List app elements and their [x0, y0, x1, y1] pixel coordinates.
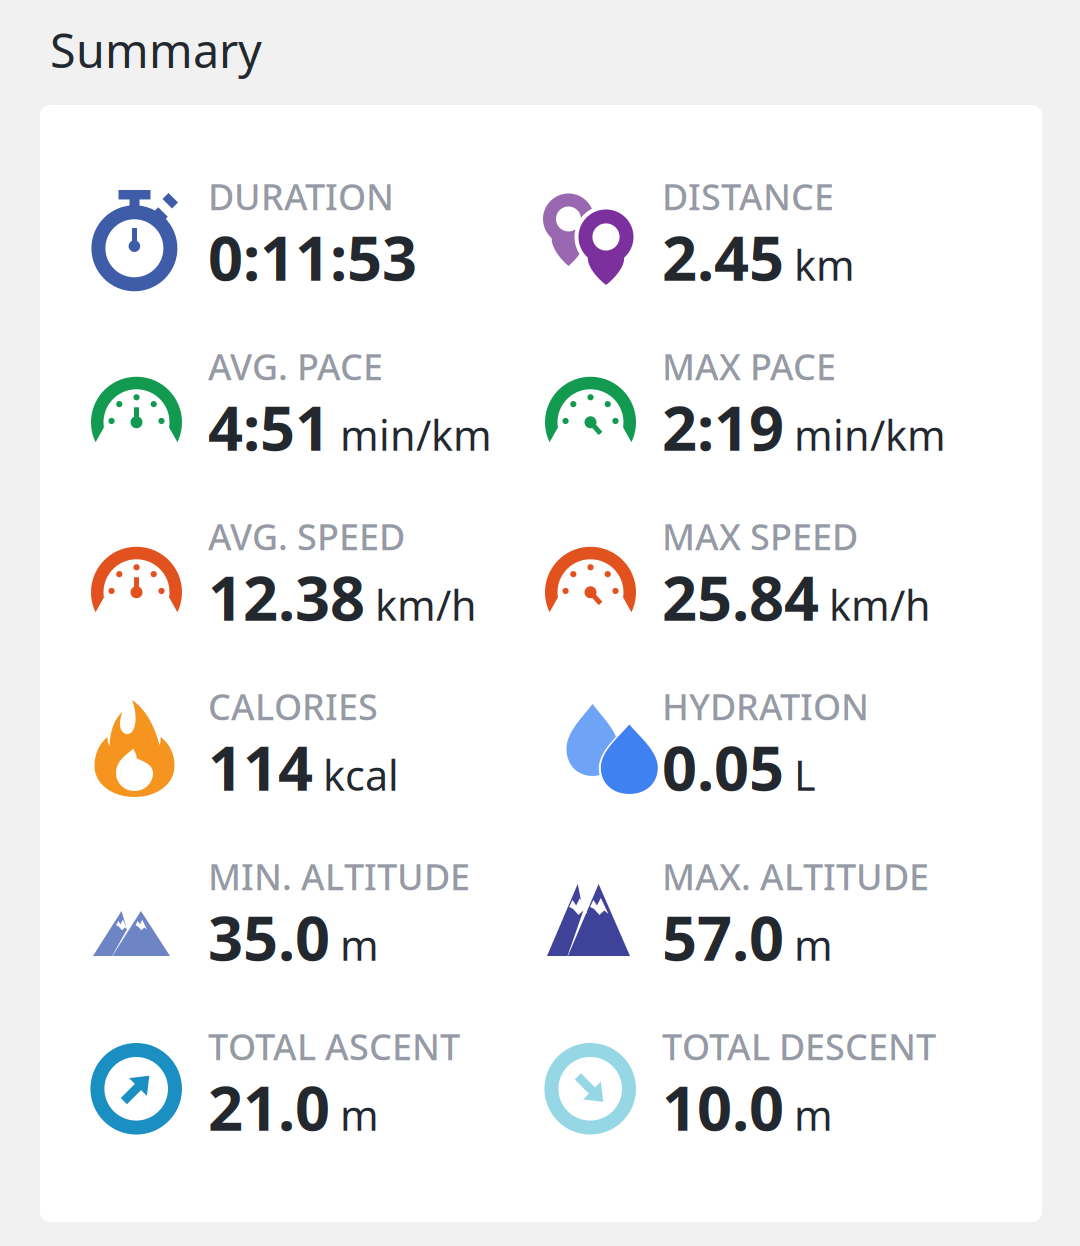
button[interactable]: MAX SPEED — [545, 490, 999, 660]
button[interactable]: CALORIES — [91, 660, 545, 830]
staticText: kcal — [323, 747, 399, 802]
button[interactable]: TOTAL DESCENT — [545, 1000, 999, 1170]
staticText: 21.0 — [208, 1066, 330, 1148]
staticText: TOTAL DESCENT — [662, 1022, 936, 1070]
staticText: MAX SPEED — [662, 512, 858, 560]
button[interactable]: MAX. ALTITUDE — [545, 830, 999, 1000]
staticText: Summary — [50, 19, 262, 81]
staticText: 57.0 — [662, 896, 784, 978]
staticText: 4:51 — [208, 386, 330, 468]
button[interactable]: MAX PACE — [545, 320, 999, 490]
button[interactable]: DISTANCE — [545, 150, 999, 320]
button[interactable]: DURATION — [91, 150, 545, 320]
staticText: 2.45 — [662, 216, 784, 298]
staticText: AVG. SPEED — [208, 512, 405, 560]
staticText: 0.05 — [662, 726, 784, 808]
staticText: km — [794, 237, 855, 292]
staticText: DISTANCE — [662, 172, 834, 220]
staticText: 35.0 — [208, 896, 330, 978]
staticText: km/h — [375, 577, 477, 632]
staticText: 10.0 — [662, 1066, 784, 1148]
staticText: m — [340, 917, 379, 972]
staticText: m — [340, 1087, 379, 1142]
button[interactable]: MIN. ALTITUDE — [91, 830, 545, 1000]
staticText: km/h — [829, 577, 931, 632]
staticText: MAX PACE — [662, 342, 836, 390]
button[interactable]: AVG. PACE — [91, 320, 545, 490]
staticText: L — [794, 747, 816, 802]
staticText: MAX. ALTITUDE — [662, 852, 929, 900]
staticText: CALORIES — [208, 682, 378, 730]
staticText: MIN. ALTITUDE — [208, 852, 470, 900]
staticText: 114 — [208, 726, 313, 808]
staticText: min/km — [340, 407, 492, 462]
staticText: DURATION — [208, 172, 394, 220]
button[interactable]: AVG. SPEED — [91, 490, 545, 660]
staticText: 12.38 — [208, 556, 365, 638]
staticText: 25.84 — [662, 556, 819, 638]
button[interactable]: HYDRATION — [545, 660, 999, 830]
button[interactable]: TOTAL ASCENT — [91, 1000, 545, 1170]
staticText: 2:19 — [662, 386, 784, 468]
staticText: m — [794, 917, 833, 972]
staticText: TOTAL ASCENT — [208, 1022, 460, 1070]
staticText: m — [794, 1087, 833, 1142]
staticText: AVG. PACE — [208, 342, 383, 390]
staticText: 0:11:53 — [208, 216, 417, 298]
staticText: HYDRATION — [662, 682, 869, 730]
staticText: min/km — [794, 407, 946, 462]
